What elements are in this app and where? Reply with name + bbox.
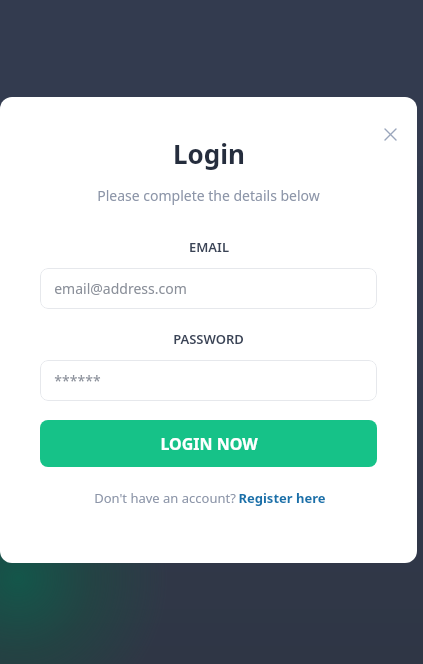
button[interactable]: LOGIN NOW — [40, 420, 377, 467]
staticText: ****** — [54, 371, 101, 390]
staticText: Login — [173, 136, 245, 171]
staticText: EMAIL — [189, 238, 229, 256]
staticText: Register here — [238, 489, 326, 507]
button[interactable]: Don't have an account? — [88, 487, 330, 509]
staticText: email@address.com — [54, 279, 187, 298]
button[interactable]: ****** — [40, 360, 377, 401]
button[interactable]: Close — [375, 119, 405, 149]
staticText: LOGIN NOW — [160, 433, 258, 455]
button[interactable]: email@address.com — [40, 268, 377, 309]
staticText: PASSWORD — [173, 330, 244, 348]
staticText: Please complete the details below — [97, 186, 320, 205]
staticText: Don't have an account? — [92, 489, 238, 507]
